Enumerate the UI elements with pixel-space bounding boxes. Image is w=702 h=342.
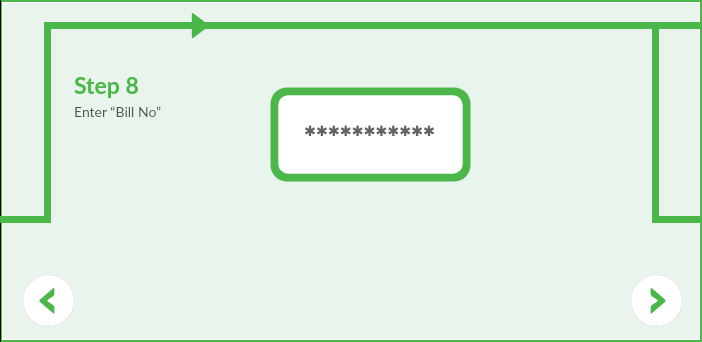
staticText: Enter “Bill No” <box>74 103 162 120</box>
staticText: Step 8 <box>74 71 139 99</box>
button[interactable]: Previous step <box>22 274 75 327</box>
button[interactable]: Next step <box>630 274 683 327</box>
